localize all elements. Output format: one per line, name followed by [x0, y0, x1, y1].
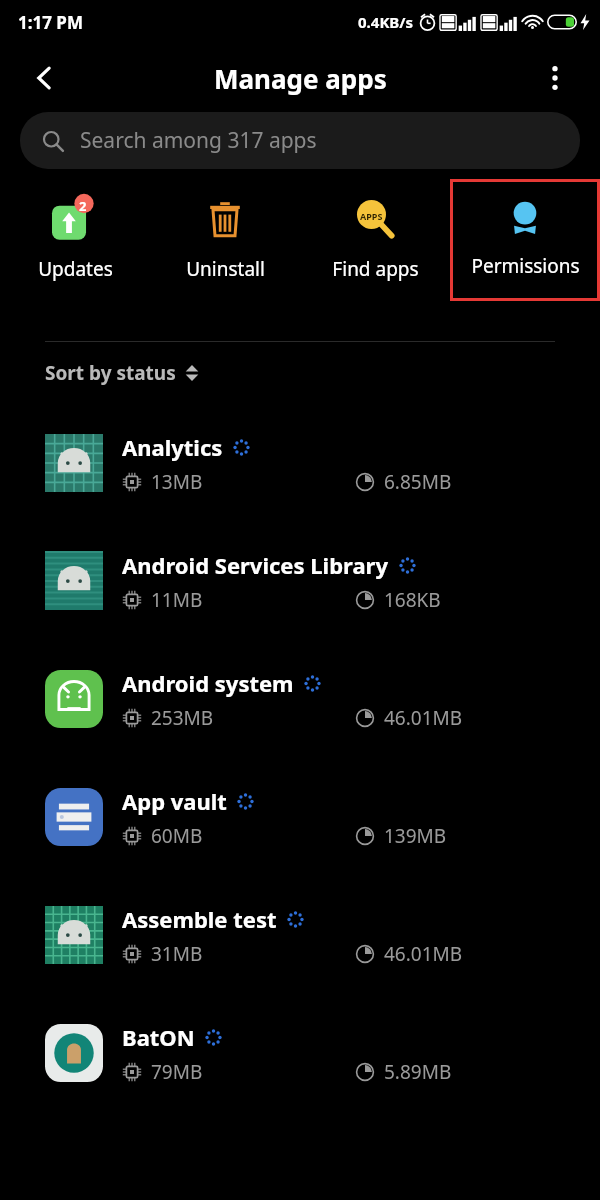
staticText: 2 — [79, 197, 87, 215]
staticText: 5.89MB — [384, 1059, 452, 1085]
staticText: 46.01MB — [384, 705, 463, 731]
button[interactable]: Analytics — [0, 404, 600, 522]
staticText: 139MB — [384, 823, 447, 849]
staticText: 0.4KB/s — [358, 12, 414, 32]
staticText: Manage apps — [214, 61, 387, 96]
button[interactable]: Search among 317 apps — [20, 112, 580, 169]
staticText: 46.01MB — [384, 941, 463, 967]
staticText: 253MB — [151, 705, 214, 731]
staticText: 168KB — [384, 587, 441, 613]
staticText: Assemble test — [122, 904, 277, 934]
staticText: 1:17 PM — [18, 11, 83, 34]
staticText: App vault — [122, 786, 227, 816]
staticText: Android Services Library — [122, 550, 389, 580]
staticText: Android system — [122, 668, 294, 698]
button[interactable]: Uninstall — [150, 179, 300, 301]
staticText: BatON — [122, 1022, 195, 1052]
button[interactable]: Permissions — [453, 182, 597, 298]
staticText: 60MB — [151, 823, 203, 849]
staticText: Search among 317 apps — [80, 126, 317, 155]
button[interactable]: 2 — [0, 179, 150, 301]
staticText: Uninstall — [186, 256, 265, 282]
button[interactable]: App vault — [0, 758, 600, 876]
staticText: 31MB — [151, 941, 203, 967]
button[interactable]: More options — [532, 55, 578, 101]
button[interactable]: BatON — [0, 994, 600, 1112]
staticText: Sort by status — [45, 360, 176, 386]
staticText: 13MB — [151, 469, 203, 495]
staticText: APPS — [360, 210, 383, 222]
staticText: 79MB — [151, 1059, 203, 1085]
button[interactable]: Back — [22, 55, 68, 101]
button[interactable]: Android Services Library — [0, 522, 600, 640]
button[interactable]: Android system — [0, 640, 600, 758]
button[interactable]: APPS — [300, 179, 450, 301]
staticText: Updates — [38, 256, 113, 282]
staticText: 11MB — [151, 587, 203, 613]
staticText: 6.85MB — [384, 469, 452, 495]
button[interactable]: Sort by status — [45, 360, 199, 386]
button[interactable]: Assemble test — [0, 876, 600, 994]
staticText: Find apps — [332, 256, 419, 282]
staticText: Analytics — [122, 432, 223, 462]
staticText: Permissions — [471, 253, 580, 279]
